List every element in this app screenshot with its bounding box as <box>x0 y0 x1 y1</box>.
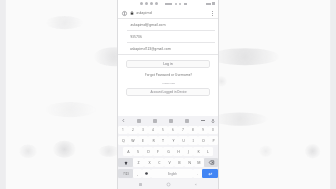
button[interactable]: Shift <box>118 158 133 167</box>
button[interactable]: S <box>133 147 143 156</box>
button[interactable]: V <box>164 158 174 167</box>
button[interactable]: Voice input <box>209 117 216 124</box>
button[interactable]: A <box>123 147 133 156</box>
button[interactable]: Log in <box>126 60 210 68</box>
button[interactable]: T <box>158 136 168 145</box>
button[interactable]: 6 <box>168 126 178 134</box>
staticText: A <box>127 149 130 154</box>
staticText: F <box>157 149 159 154</box>
button[interactable]: L <box>203 147 213 156</box>
button[interactable]: 2 <box>128 126 138 134</box>
staticText: O <box>202 138 205 143</box>
button[interactable]: Expand toolbar <box>120 117 127 124</box>
button[interactable]: Home <box>164 180 173 189</box>
staticText: askapimd@gmail.com <box>130 22 166 27</box>
staticText: 3 <box>142 128 144 132</box>
button[interactable]: 8 <box>188 126 198 134</box>
staticText: askapimd123@gmail.com <box>130 46 171 51</box>
staticText: 1 <box>122 128 124 132</box>
button[interactable]: N <box>184 158 194 167</box>
button[interactable]: R <box>148 136 158 145</box>
button[interactable]: K <box>193 147 203 156</box>
button[interactable]: F <box>153 147 163 156</box>
staticText: Z <box>137 160 140 165</box>
staticText: G <box>167 149 170 154</box>
staticText: V <box>168 160 171 165</box>
button[interactable]: J <box>183 147 193 156</box>
staticText: Account Logged in Device <box>150 90 187 94</box>
button[interactable]: 7 <box>178 126 188 134</box>
button[interactable]: 935706 <box>127 31 215 42</box>
button[interactable]: 9 <box>198 126 208 134</box>
button[interactable]: Site settings <box>120 9 128 17</box>
button[interactable]: H <box>173 147 183 156</box>
button[interactable]: E <box>138 136 148 145</box>
staticText: W <box>131 138 135 143</box>
staticText: English <box>168 172 177 176</box>
button[interactable]: Forgot Password or Username? <box>126 73 210 77</box>
button[interactable]: 0 <box>208 126 218 134</box>
staticText: R <box>152 138 155 143</box>
staticText: S <box>137 149 139 154</box>
button[interactable]: Backspace <box>204 158 218 167</box>
button[interactable]: 5 <box>158 126 168 134</box>
button[interactable]: askapimd <box>130 8 208 17</box>
staticText: Q <box>122 138 125 143</box>
staticText: , <box>137 171 138 176</box>
button[interactable]: X <box>144 158 154 167</box>
button[interactable]: U <box>178 136 188 145</box>
staticText: B <box>178 160 181 165</box>
staticText: Create new <box>162 81 175 84</box>
staticText: E <box>142 138 144 143</box>
button[interactable]: Minimise <box>199 117 206 124</box>
staticText: . <box>197 171 198 176</box>
button[interactable]: Enter <box>202 169 218 178</box>
staticText: askapimd <box>136 10 152 15</box>
button[interactable]: C <box>154 158 164 167</box>
button[interactable]: G <box>163 147 173 156</box>
button[interactable]: D <box>143 147 153 156</box>
button[interactable]: Change language <box>142 169 151 178</box>
button[interactable]: W <box>128 136 138 145</box>
staticText: 7 <box>182 128 184 132</box>
button[interactable]: I <box>188 136 198 145</box>
button[interactable]: , <box>133 169 142 178</box>
button[interactable]: Stickers <box>135 117 143 125</box>
staticText: 5 <box>162 128 164 132</box>
button[interactable]: ?123 <box>118 169 133 178</box>
button[interactable]: O <box>198 136 208 145</box>
button[interactable]: English <box>151 169 193 178</box>
button[interactable]: 3 <box>138 126 148 134</box>
button[interactable]: Q <box>118 136 128 145</box>
button[interactable]: askapimd123@gmail.com <box>127 43 215 54</box>
staticText: K <box>197 149 200 154</box>
button[interactable]: Back <box>191 180 200 189</box>
button[interactable]: Settings <box>183 117 191 125</box>
button[interactable]: Z <box>133 158 144 167</box>
button[interactable]: Y <box>168 136 178 145</box>
staticText: 0 <box>212 128 214 132</box>
staticText: 2 <box>132 128 134 132</box>
staticText: 9 <box>202 128 204 132</box>
staticText: J <box>188 149 189 154</box>
staticText: D <box>147 149 150 154</box>
staticText: L <box>207 149 209 154</box>
staticText: ?123 <box>123 172 129 176</box>
button[interactable]: P <box>208 136 218 145</box>
button[interactable]: M <box>194 158 204 167</box>
staticText: T <box>162 138 164 143</box>
button[interactable]: Account Logged in Device <box>126 88 210 96</box>
button[interactable]: More options <box>208 9 216 17</box>
staticText: Forgot Password or Username? <box>145 73 192 77</box>
staticText: 935706 <box>130 34 142 39</box>
button[interactable]: 4 <box>148 126 158 134</box>
staticText: M <box>197 160 201 165</box>
button[interactable]: askapimd@gmail.com <box>127 19 215 30</box>
button[interactable]: Recents <box>136 180 145 189</box>
button[interactable]: Clipboard <box>167 117 175 125</box>
button[interactable]: B <box>174 158 184 167</box>
button[interactable]: GIF <box>151 117 159 125</box>
button[interactable]: 1 <box>118 126 128 134</box>
staticText: U <box>182 138 185 143</box>
